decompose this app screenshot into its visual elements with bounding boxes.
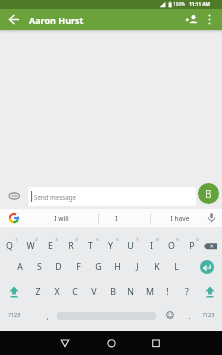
staticText: J (136, 261, 139, 273)
button[interactable]: ? (177, 282, 196, 302)
staticText: M (146, 286, 154, 298)
button[interactable]: P (182, 236, 201, 256)
button[interactable]: ?123 (0, 308, 33, 322)
button[interactable]: B (198, 183, 219, 204)
button[interactable] (6, 284, 22, 300)
staticText: 11:11 AM (189, 1, 210, 7)
button[interactable] (200, 260, 214, 274)
staticText: ?123 (8, 311, 21, 319)
staticText: I have (170, 214, 190, 223)
button[interactable]: M (140, 282, 159, 302)
button[interactable]: B (103, 282, 122, 302)
button[interactable]: Q (0, 236, 19, 256)
button[interactable] (6, 188, 23, 204)
staticText: A (17, 261, 23, 273)
staticText: O (168, 240, 175, 252)
staticText: 7 (136, 237, 139, 243)
staticText: K (154, 261, 160, 273)
staticText: P (189, 240, 195, 252)
staticText: I (115, 214, 118, 223)
button[interactable]: J (128, 257, 147, 277)
button[interactable]: ! (158, 282, 177, 302)
staticText: 9 (176, 237, 179, 243)
staticText: Aaron Hurst (29, 14, 84, 26)
button[interactable]: Z (28, 282, 47, 302)
button[interactable]: K (147, 257, 166, 277)
staticText: 2 (35, 237, 38, 243)
button[interactable]: , (38, 307, 56, 325)
button[interactable]: I will (31, 210, 91, 226)
button[interactable]: U (121, 236, 140, 256)
staticText: I (150, 240, 153, 252)
button[interactable]: A (10, 257, 29, 277)
button[interactable]: . (180, 307, 198, 325)
button[interactable]: I (142, 236, 161, 256)
button[interactable]: H (108, 257, 127, 277)
button[interactable]: E (41, 236, 60, 256)
staticText: U (127, 240, 134, 252)
staticText: 5 (96, 237, 99, 243)
button[interactable]: I (108, 210, 125, 226)
button[interactable] (103, 336, 120, 351)
button[interactable] (203, 11, 216, 28)
staticText: T (88, 240, 93, 252)
button[interactable]: W (21, 236, 40, 256)
staticText: R (68, 240, 74, 252)
button[interactable] (163, 308, 177, 322)
button[interactable] (205, 211, 218, 225)
staticText: I will (54, 214, 69, 223)
staticText: 3 (55, 237, 58, 243)
staticText: Q (6, 240, 13, 252)
button[interactable]: S (30, 257, 49, 277)
button[interactable]: X (47, 282, 66, 302)
button[interactable] (57, 336, 73, 351)
button[interactable]: ?123 (190, 308, 222, 322)
staticText: 1 (15, 237, 18, 243)
staticText: V (91, 286, 97, 298)
staticText: D (55, 261, 62, 273)
staticText: G (95, 261, 102, 273)
staticText: 100% (173, 1, 185, 7)
button[interactable]: Send message (28, 187, 196, 206)
button[interactable] (184, 12, 200, 27)
button[interactable]: F (69, 257, 88, 277)
staticText: Send message (34, 193, 77, 201)
staticText: Z (35, 286, 41, 298)
button[interactable]: R (61, 236, 80, 256)
button[interactable]: L (167, 257, 186, 277)
staticText: C (72, 286, 78, 298)
button[interactable]: Y (101, 236, 120, 256)
button[interactable] (148, 336, 164, 351)
staticText: X (54, 286, 60, 298)
button[interactable]: V (84, 282, 103, 302)
button[interactable]: N (121, 282, 140, 302)
staticText: W (26, 240, 35, 252)
staticText: ! (166, 286, 169, 298)
staticText: . (188, 311, 191, 321)
staticText: ? (185, 286, 189, 298)
staticText: F (76, 261, 81, 273)
button[interactable]: C (65, 282, 84, 302)
button[interactable]: O (162, 236, 181, 256)
staticText: 6 (116, 237, 119, 243)
staticText: B (110, 286, 116, 298)
staticText: , (46, 311, 49, 321)
button[interactable] (202, 284, 218, 300)
staticText: ?123 (202, 311, 215, 319)
staticText: H (114, 261, 121, 273)
button[interactable] (201, 238, 221, 254)
button[interactable]: G (89, 257, 108, 277)
staticText: E (48, 240, 53, 252)
staticText: N (127, 286, 134, 298)
button[interactable]: T (81, 236, 100, 256)
staticText: B (205, 187, 212, 201)
button[interactable] (7, 211, 21, 225)
staticText: L (174, 261, 179, 273)
staticText: 4 (75, 237, 78, 243)
button[interactable]: D (49, 257, 68, 277)
button[interactable] (6, 11, 22, 28)
staticText: 0 (196, 237, 199, 243)
button[interactable]: I have (150, 210, 210, 226)
staticText: 8 (156, 237, 159, 243)
